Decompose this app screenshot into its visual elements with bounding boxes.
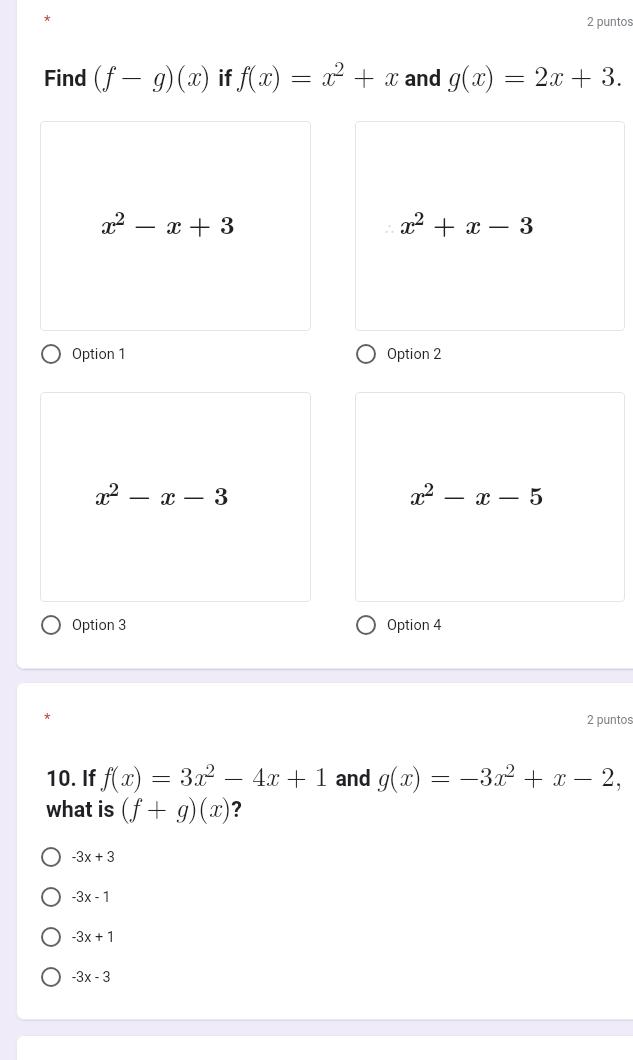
staticText: 10. If f(x) = 3x2 − 4x + 1 and g(x) = −3… bbox=[46, 755, 633, 824]
staticText: -3x + 1 bbox=[72, 929, 115, 946]
staticText: Option 1 bbox=[72, 346, 127, 363]
staticText: Option 4 bbox=[387, 617, 442, 634]
staticText: 2 puntos bbox=[587, 15, 633, 29]
button[interactable]: x2 − x + 3 bbox=[40, 121, 311, 371]
button[interactable]: ∴ x2 + x − 3 bbox=[355, 121, 625, 371]
button[interactable]: x2 − x − 3 bbox=[40, 392, 311, 642]
button[interactable]: -3x + 1 bbox=[40, 917, 440, 957]
staticText: x2 − x + 3 bbox=[100, 204, 235, 242]
button[interactable]: -3x + 3 bbox=[40, 837, 440, 877]
staticText: 2 puntos bbox=[587, 713, 633, 727]
staticText: Option 3 bbox=[72, 617, 127, 634]
staticText: Find (f − g)(x) if f(x) = x2 + x and g(x… bbox=[44, 53, 631, 94]
staticText: Option 2 bbox=[387, 346, 442, 363]
button[interactable]: -3x - 3 bbox=[40, 957, 440, 997]
staticText: -3x - 3 bbox=[72, 969, 111, 986]
staticText: * bbox=[44, 12, 51, 30]
staticText: ∴ x2 + x − 3 bbox=[385, 204, 534, 242]
staticText: -3x - 1 bbox=[72, 889, 111, 906]
button[interactable]: x2 − x − 5 bbox=[355, 392, 625, 642]
staticText: x2 − x − 5 bbox=[409, 475, 544, 513]
button[interactable]: -3x - 1 bbox=[40, 877, 440, 917]
staticText: -3x + 3 bbox=[72, 849, 115, 866]
staticText: * bbox=[44, 710, 51, 728]
staticText: x2 − x − 3 bbox=[94, 475, 229, 513]
